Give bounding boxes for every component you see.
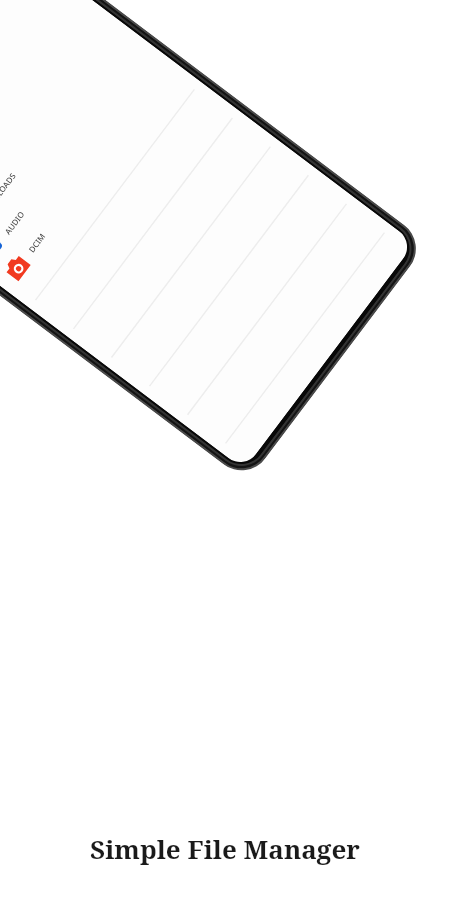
button[interactable]: Simple File Manager screenshot: [0, 0, 428, 482]
staticText: Simple File Manager: [0, 831, 450, 866]
button[interactable]: DOWNLOADS: [0, 25, 130, 249]
button[interactable]: IMAGES: [0, 0, 58, 195]
staticText: AUDIO: [2, 208, 27, 236]
button[interactable]: STORAGE: [0, 0, 34, 177]
button[interactable]: DOCUMENTS: [0, 0, 82, 213]
staticText: DCIM: [26, 230, 48, 254]
button[interactable]: AUDIO: [0, 43, 154, 267]
button[interactable]: DCIM: [0, 61, 178, 285]
staticText: DOWNLOADS: [0, 170, 18, 218]
button[interactable]: VIDEOS: [0, 7, 106, 231]
